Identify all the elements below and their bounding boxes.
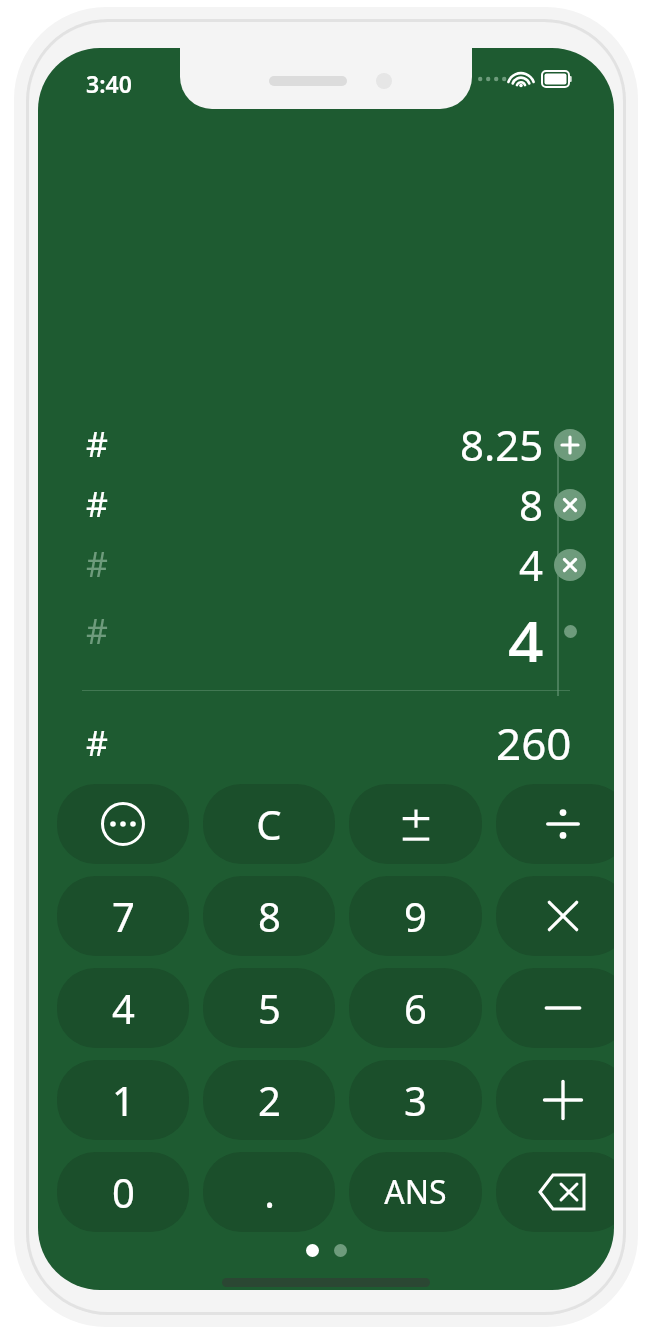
staticText: 6 <box>404 981 427 1035</box>
staticText: 3:40 <box>86 68 132 99</box>
staticText: 8 <box>258 889 281 943</box>
staticText: 8.25 <box>460 416 544 473</box>
staticText: 0 <box>112 1165 135 1219</box>
staticText: 260 <box>496 713 572 773</box>
staticText: 8 <box>519 476 544 533</box>
button[interactable]: Plus <box>554 429 586 461</box>
staticText: 4 <box>508 600 544 662</box>
button[interactable]: 4 <box>57 968 189 1048</box>
button[interactable]: 6 <box>349 968 482 1048</box>
staticText: # <box>86 608 108 654</box>
staticText: ANS <box>384 1170 447 1214</box>
staticText: 3 <box>404 1073 427 1127</box>
button[interactable]: C <box>203 784 335 864</box>
staticText: 4 <box>112 981 135 1035</box>
staticText: # <box>86 541 108 587</box>
staticText: . <box>264 1165 275 1219</box>
button[interactable]: 1 <box>57 1060 189 1140</box>
staticText: 7 <box>112 889 135 943</box>
button[interactable]: Plus minus <box>349 784 482 864</box>
staticText: 1 <box>112 1073 135 1127</box>
staticText: C <box>256 797 282 851</box>
button[interactable]: Times <box>554 549 586 581</box>
button[interactable]: Times <box>554 489 586 521</box>
button[interactable]: 5 <box>203 968 335 1048</box>
button[interactable]: More options <box>57 784 189 864</box>
button[interactable]: Multiply <box>496 876 614 956</box>
button[interactable]: Divide <box>496 784 614 864</box>
button[interactable]: 2 <box>203 1060 335 1140</box>
staticText: # <box>86 481 108 527</box>
button[interactable]: 0 <box>57 1152 189 1232</box>
staticText: 9 <box>404 889 427 943</box>
staticText: 2 <box>258 1073 281 1127</box>
staticText: 5 <box>258 981 281 1035</box>
button[interactable]: 8 <box>203 876 335 956</box>
button[interactable]: 3 <box>349 1060 482 1140</box>
button[interactable]: 7 <box>57 876 189 956</box>
button[interactable]: 9 <box>349 876 482 956</box>
button[interactable]: Plus <box>496 1060 614 1140</box>
button[interactable]: Minus <box>496 968 614 1048</box>
button[interactable]: . <box>203 1152 335 1232</box>
button[interactable]: ANS <box>349 1152 482 1232</box>
staticText: # <box>86 720 108 766</box>
staticText: 4 <box>519 536 544 593</box>
staticText: # <box>86 421 108 467</box>
button[interactable]: Backspace <box>496 1152 614 1232</box>
